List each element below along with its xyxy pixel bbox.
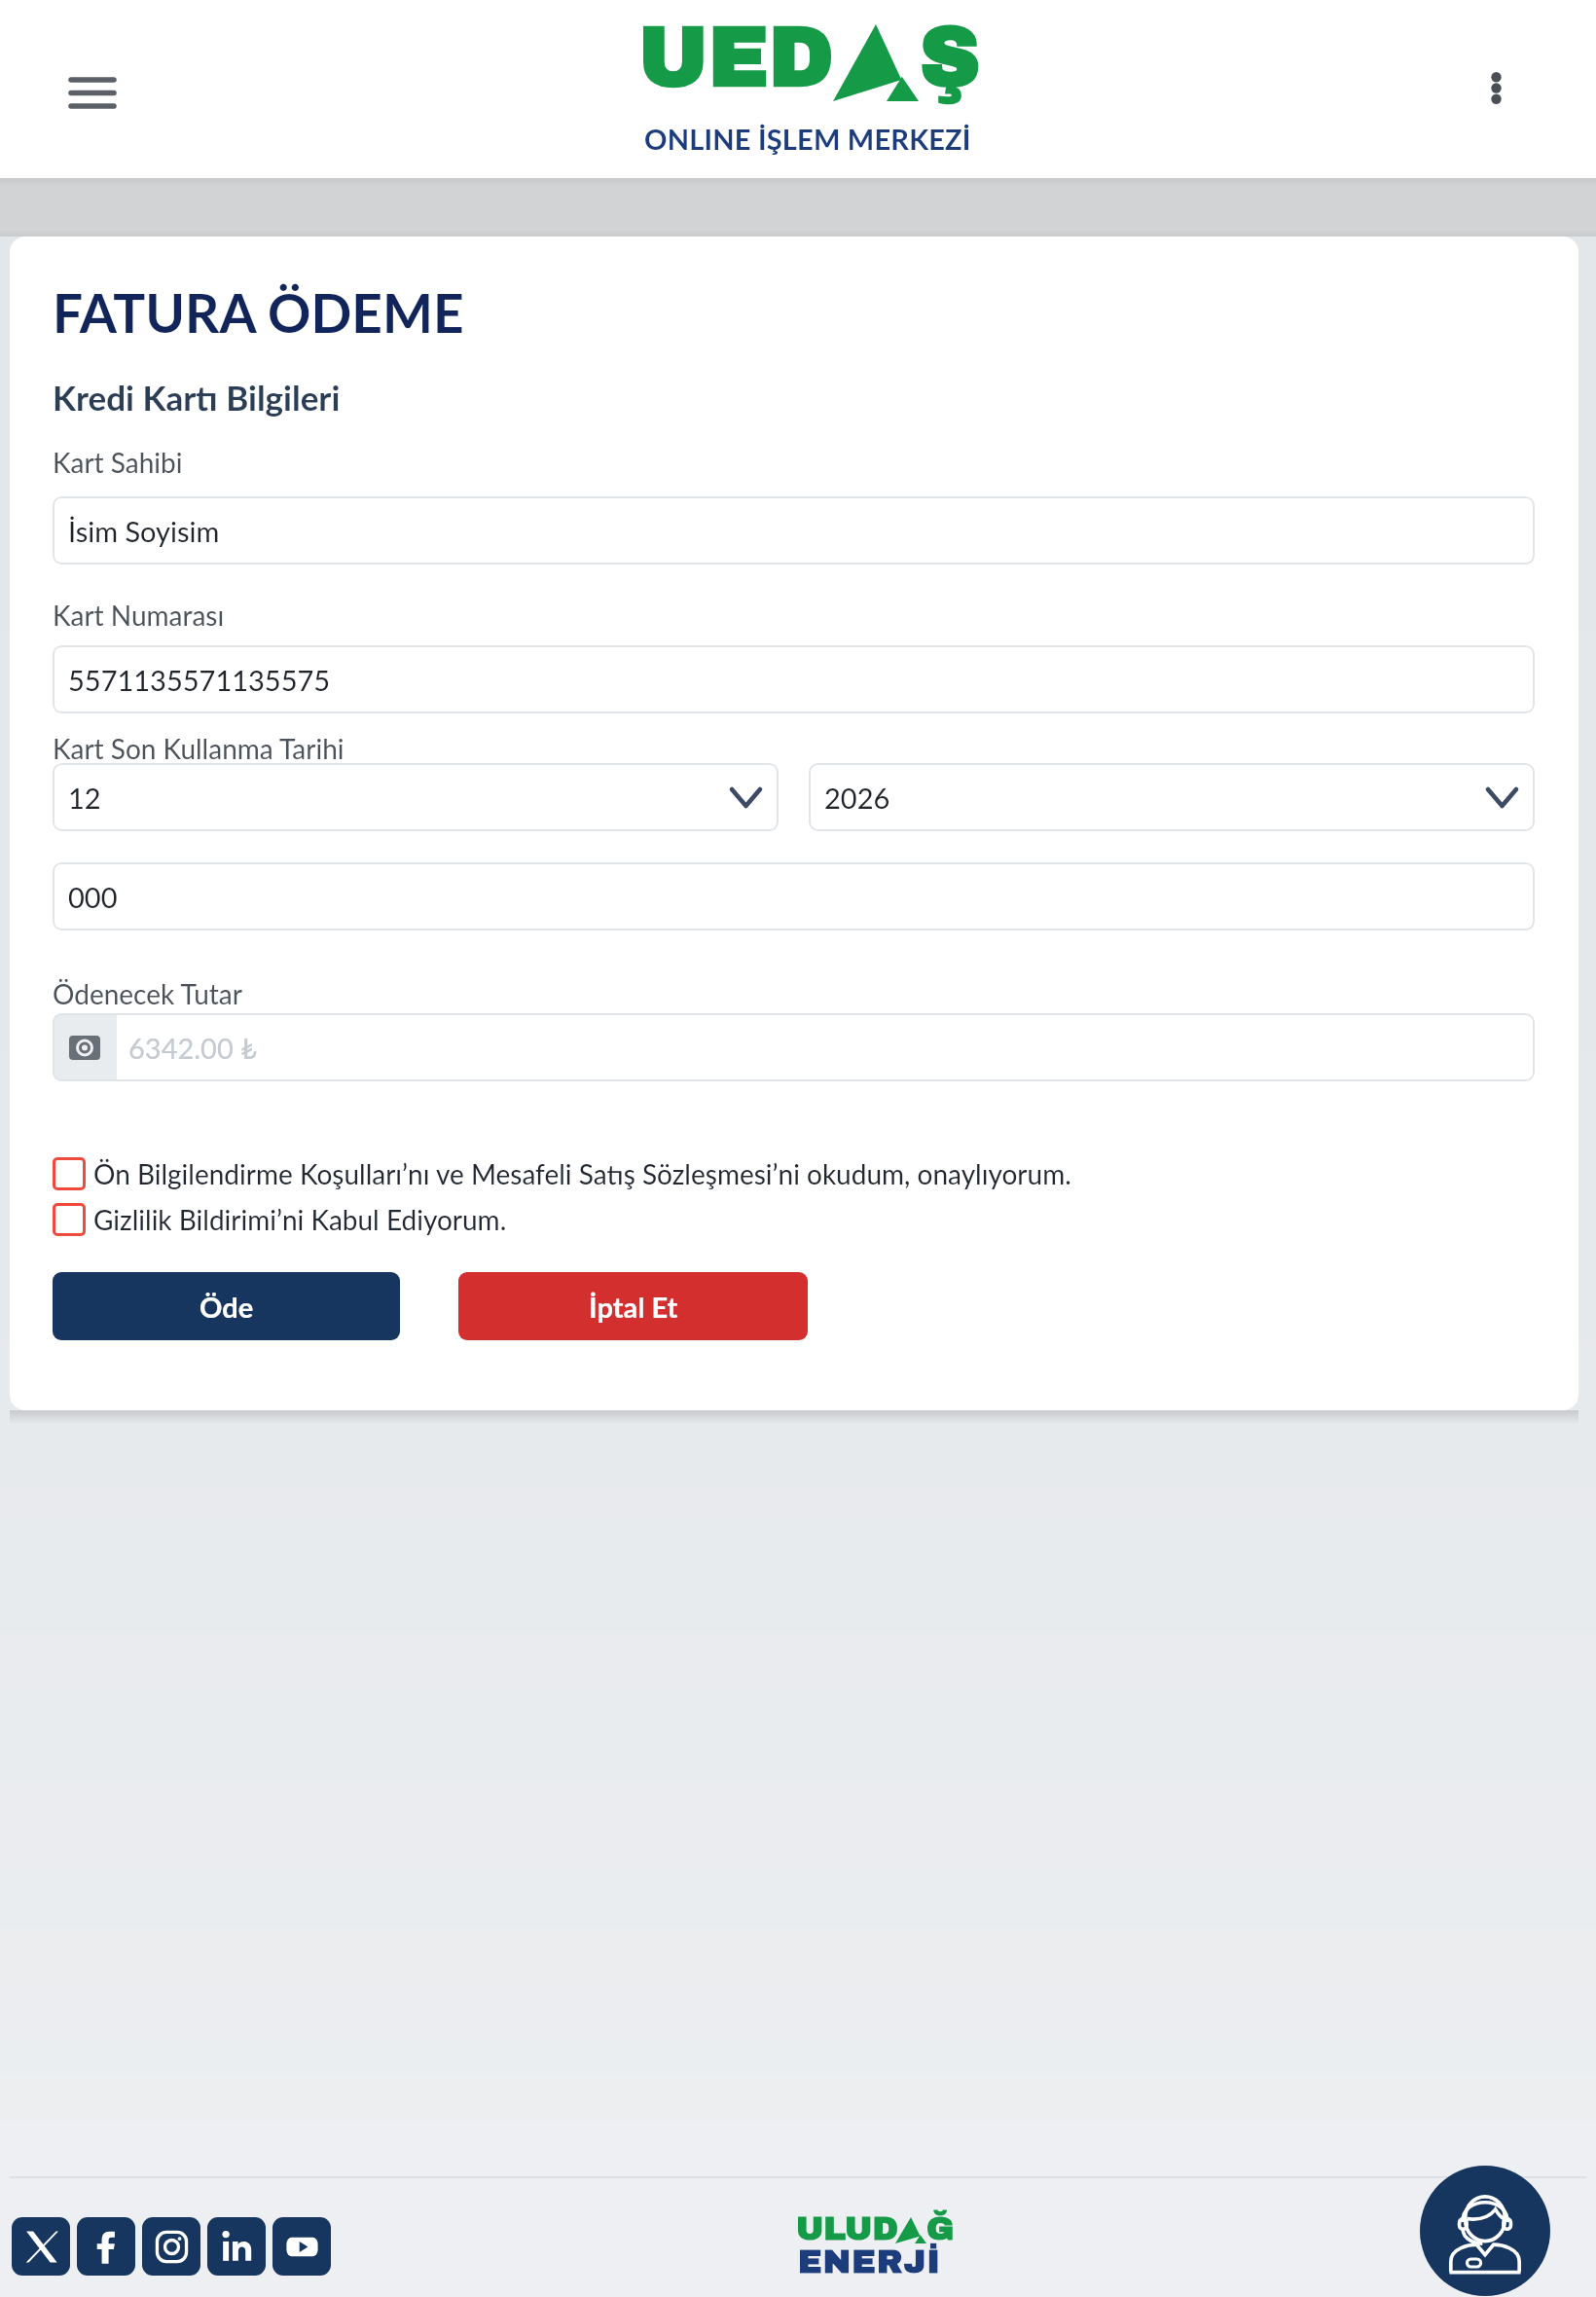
- button[interactable]: Öde: [53, 1272, 400, 1340]
- button[interactable]: 6342.00 ₺: [53, 1013, 1535, 1081]
- button[interactable]: İptal Et: [458, 1272, 808, 1340]
- staticText: İptal Et: [589, 1290, 678, 1324]
- staticText: FATURA ÖDEME: [53, 280, 464, 345]
- button[interactable]: More options: [1457, 49, 1535, 127]
- button[interactable]: 5571135571135575: [53, 645, 1535, 713]
- staticText: 12: [68, 781, 101, 815]
- staticText: ONLINE İŞLEM MERKEZİ: [644, 122, 971, 156]
- staticText: 5571135571135575: [68, 663, 331, 697]
- staticText: Ön Bilgilendirme Koşulları’nı ve Mesafel…: [93, 1157, 1071, 1190]
- button[interactable]: Customer support: [1420, 2166, 1550, 2296]
- button[interactable]: Gizlilik Bildirimi’ni Kabul Ediyorum.: [53, 1196, 507, 1243]
- staticText: 6342.00 ₺: [128, 1031, 258, 1065]
- staticText: ULUD: [796, 2210, 898, 2246]
- button[interactable]: Instagram: [142, 2217, 200, 2276]
- staticText: Ödenecek Tutar: [53, 977, 242, 1010]
- staticText: ENERJİ: [798, 2243, 941, 2279]
- staticText: Öde: [199, 1290, 254, 1324]
- button[interactable]: Facebook: [77, 2217, 135, 2276]
- button[interactable]: İsim Soyisim: [53, 496, 1535, 565]
- staticText: Gizlilik Bildirimi’ni Kabul Ediyorum.: [93, 1203, 507, 1236]
- staticText: Kart Son Kullanma Tarihi: [53, 732, 345, 765]
- button[interactable]: YouTube: [272, 2217, 331, 2276]
- button[interactable]: Select 12: [53, 763, 779, 831]
- button[interactable]: Ön Bilgilendirme Koşulları’nı ve Mesafel…: [53, 1150, 1071, 1197]
- staticText: Kart Sahibi: [53, 446, 183, 479]
- button[interactable]: X (Twitter): [12, 2217, 70, 2276]
- button[interactable]: LinkedIn: [207, 2217, 266, 2276]
- staticText: Kredi Kartı Bilgileri: [53, 377, 341, 418]
- button[interactable]: Menu: [47, 45, 138, 136]
- staticText: İsim Soyisim: [68, 514, 220, 548]
- staticText: 000: [68, 880, 118, 914]
- button[interactable]: Select 2026: [809, 763, 1535, 831]
- staticText: Ğ: [926, 2210, 955, 2246]
- staticText: 2026: [824, 781, 890, 815]
- staticText: UED: [638, 12, 834, 103]
- staticText: Kart Numarası: [53, 599, 225, 632]
- staticText: Ş: [920, 12, 981, 103]
- button[interactable]: 000: [53, 862, 1535, 930]
